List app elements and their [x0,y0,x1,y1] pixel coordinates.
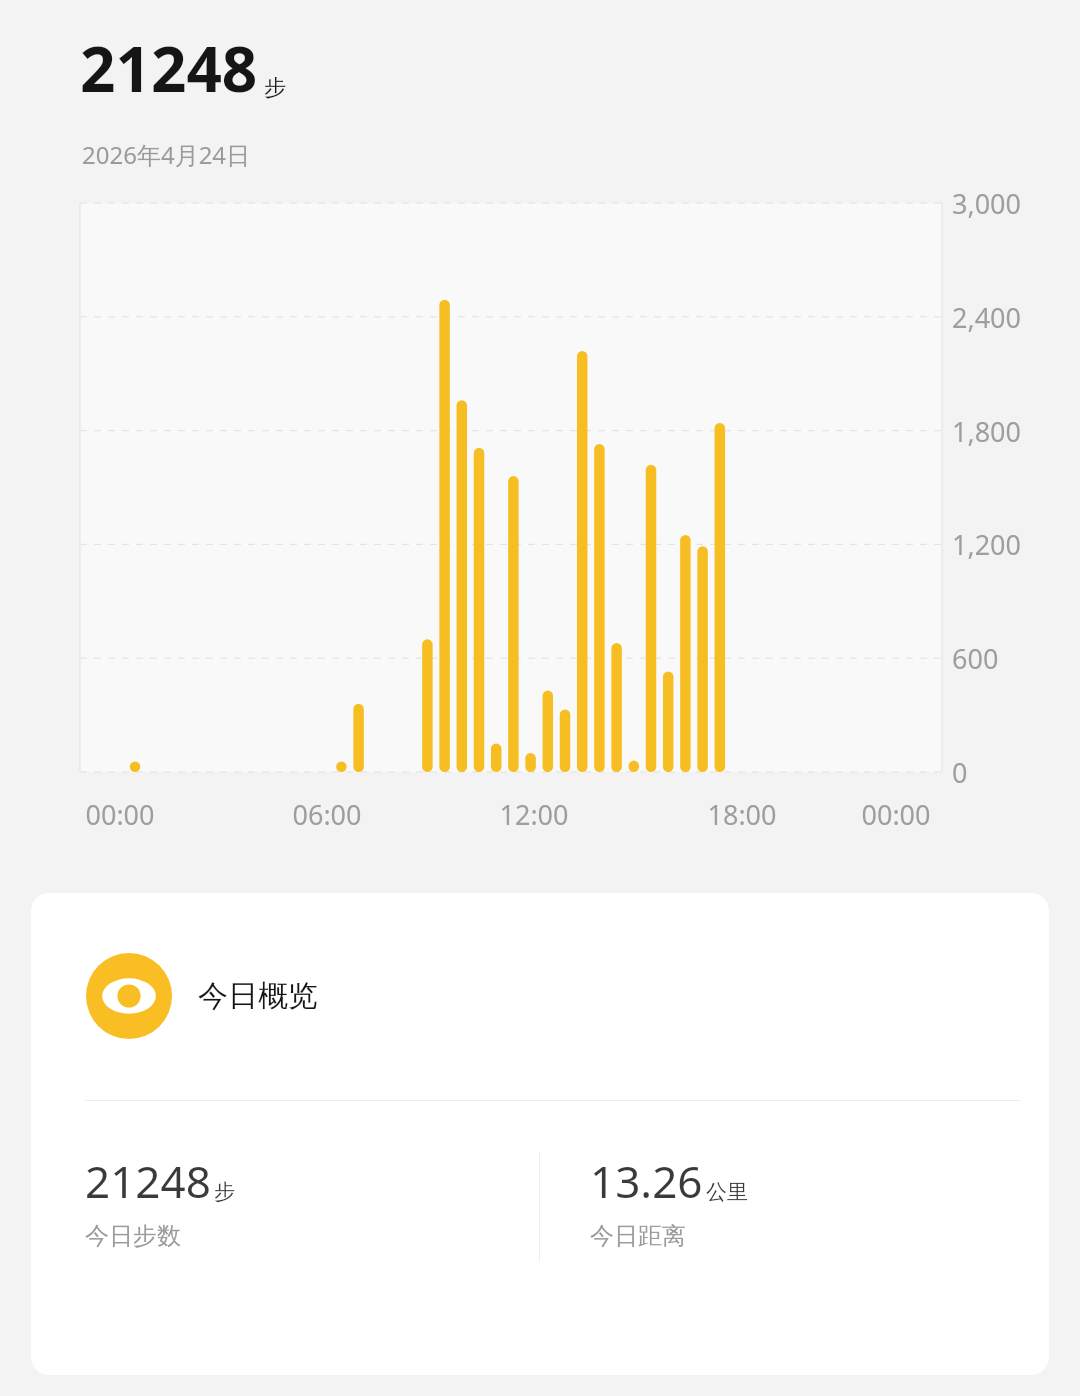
staticText: 21248 [85,1151,211,1211]
staticText: 今日步数 [85,1221,181,1251]
staticText: 1,200 [952,526,1022,563]
staticText: 今日距离 [590,1221,686,1251]
other: 今日概览 [86,953,172,1039]
staticText: 600 [952,640,999,677]
staticText: 2026年4月24日 [82,138,251,171]
staticText: 今日概览 [198,977,318,1015]
staticText: 步 [264,74,286,102]
staticText: 18:00 [672,796,812,833]
button[interactable]: 今日概览 [31,893,1049,1098]
staticText: 1,800 [952,413,1022,450]
staticText: 13.26 [590,1151,703,1211]
staticText: 公里 [706,1179,748,1205]
button[interactable]: 21248 [85,1151,539,1281]
staticText: 06:00 [257,796,397,833]
staticText: 0 [952,754,968,791]
staticText: 步 [214,1179,235,1205]
staticText: 00:00 [50,796,190,833]
button[interactable]: 13.26 [590,1151,1049,1281]
staticText: 3,000 [952,185,1022,222]
staticText: 2,400 [952,299,1022,336]
staticText: 21248 [80,26,258,110]
staticText: 00:00 [826,796,966,833]
staticText: 12:00 [464,796,604,833]
